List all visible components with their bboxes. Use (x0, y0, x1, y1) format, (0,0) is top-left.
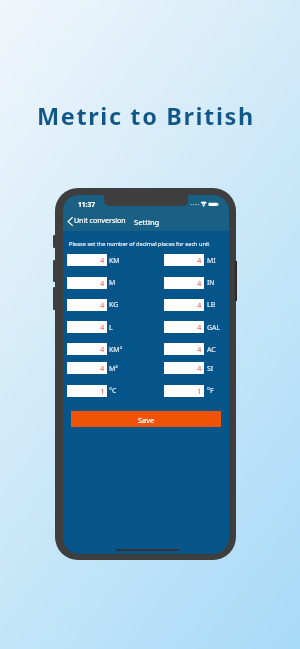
staticText: LB (207, 300, 216, 310)
staticText: 4 (100, 344, 105, 354)
staticText: 11:37 (78, 200, 95, 209)
staticText: Unit conversion (74, 216, 126, 226)
staticText: 4 (197, 344, 202, 354)
button[interactable]: 4 (164, 343, 204, 355)
staticText: GAL (207, 323, 221, 333)
staticText: 1 (197, 386, 202, 396)
button[interactable]: 4 (164, 321, 204, 333)
staticText: 4 (197, 300, 202, 310)
button[interactable]: 1 (67, 385, 107, 397)
staticText: KM (109, 256, 120, 266)
staticText: AC (207, 345, 216, 355)
staticText: °C (109, 386, 117, 396)
staticText: 4 (197, 322, 202, 332)
button[interactable]: Unit conversion (67, 213, 126, 229)
button[interactable]: 4 (67, 254, 107, 266)
button[interactable]: 4 (67, 321, 107, 333)
staticText: 4 (197, 255, 202, 265)
staticText: KM² (109, 345, 123, 355)
button[interactable]: 4 (67, 277, 107, 289)
button[interactable]: Setting (132, 214, 161, 230)
staticText: 1 (100, 386, 105, 396)
staticText: 4 (100, 278, 105, 288)
staticText: 4 (100, 300, 105, 310)
staticText: SI (207, 364, 214, 374)
staticText: 4 (197, 363, 202, 373)
staticText: L (109, 323, 113, 333)
staticText: M (109, 278, 116, 288)
staticText: Save (138, 415, 155, 425)
button[interactable]: 4 (164, 299, 204, 311)
staticText: M² (109, 364, 118, 374)
staticText: Please set the number of decimal places … (69, 240, 210, 248)
staticText: Metric to British (37, 100, 255, 132)
staticText: °F (207, 386, 214, 396)
staticText: MI (207, 256, 216, 266)
button[interactable]: 4 (67, 362, 107, 374)
button[interactable]: 4 (164, 254, 204, 266)
staticText: 4 (100, 363, 105, 373)
button[interactable]: 4 (164, 362, 204, 374)
staticText: KG (109, 300, 119, 310)
button[interactable]: 4 (67, 343, 107, 355)
staticText: 4 (197, 278, 202, 288)
staticText: 4 (100, 255, 105, 265)
staticText: IN (207, 278, 215, 288)
button[interactable]: Save (71, 411, 221, 427)
button[interactable]: 1 (164, 385, 204, 397)
staticText: 4 (100, 322, 105, 332)
button[interactable]: 4 (67, 299, 107, 311)
staticText: Setting (134, 217, 160, 227)
button[interactable]: 4 (164, 277, 204, 289)
